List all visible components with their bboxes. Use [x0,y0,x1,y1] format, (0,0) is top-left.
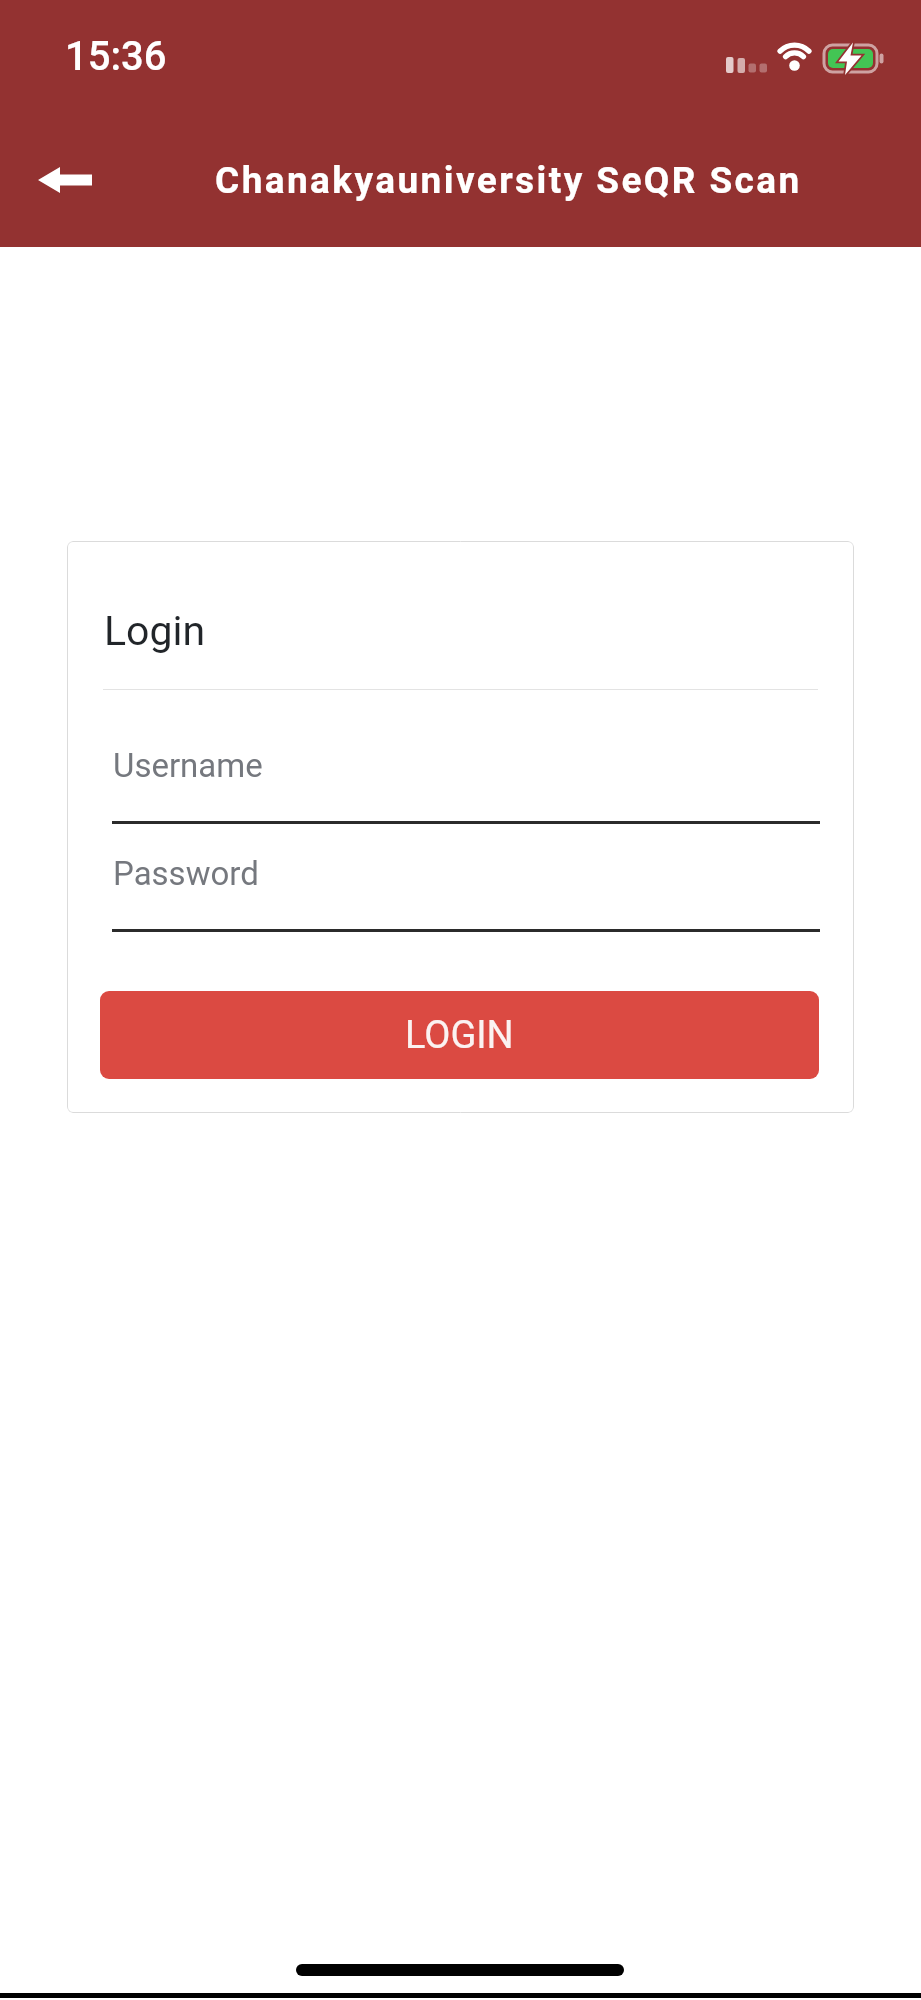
staticText: Password [113,854,259,893]
staticText: Username [113,746,263,785]
staticText: Chanakyauniversity SeQR Scan [215,159,802,202]
button[interactable]: Username [112,741,820,826]
staticText: 15:36 [65,33,167,80]
button[interactable]: Password [112,849,820,934]
staticText: Login [104,607,206,655]
button[interactable]: LOGIN [100,991,819,1079]
button[interactable] [24,152,108,208]
staticText: LOGIN [405,1013,514,1058]
